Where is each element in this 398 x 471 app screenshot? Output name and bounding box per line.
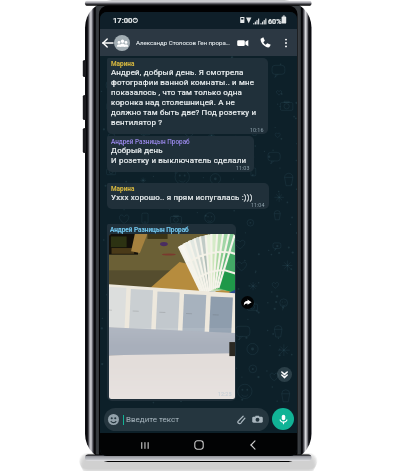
staticText: Андрей Разницын Прораб (110, 226, 189, 234)
button[interactable]: Введите текст (104, 408, 269, 431)
staticText: Андрей Разницын Прораб (111, 138, 190, 146)
button[interactable]: Home (188, 434, 210, 456)
button[interactable]: Attach (234, 413, 247, 426)
button[interactable]: Марина (107, 58, 268, 134)
staticText: 17:00 (113, 16, 133, 25)
staticText: 11:03 (236, 165, 250, 171)
button[interactable]: Voice message (272, 408, 294, 430)
button[interactable]: Forward (241, 296, 254, 309)
button[interactable]: Recent apps (133, 434, 155, 456)
button[interactable]: Camera (251, 413, 264, 426)
staticText: Марина (111, 185, 135, 193)
staticText: Уххх хорошо.. я прям испугалась :))) (111, 193, 253, 202)
button[interactable]: Scroll to bottom (277, 367, 292, 382)
staticText: 10:16 (250, 127, 264, 133)
button[interactable]: Андрей Разницын Прораб (107, 136, 254, 172)
staticText: 11:04 (251, 202, 265, 208)
button[interactable]: Андрей Разницын Прораб (107, 224, 236, 401)
button[interactable]: Video call (235, 35, 251, 51)
staticText: 60% (268, 17, 282, 25)
button[interactable]: Group avatar (114, 35, 130, 51)
button[interactable]: Call (258, 35, 273, 50)
button[interactable]: Back (101, 36, 115, 50)
staticText: Введите текст (126, 415, 180, 424)
button[interactable]: More options (279, 36, 293, 50)
staticText: Александр Столосов Ген прора… (136, 39, 230, 46)
staticText: Андрей, добрый день. Я смотрела фотограф… (111, 68, 264, 127)
staticText: Добрый день И розетку и выключатель сдел… (111, 146, 247, 165)
button[interactable]: Back (242, 434, 264, 456)
button[interactable]: Марина (107, 183, 269, 209)
staticText: Марина (111, 60, 135, 68)
staticText: 12:25 (218, 391, 232, 397)
